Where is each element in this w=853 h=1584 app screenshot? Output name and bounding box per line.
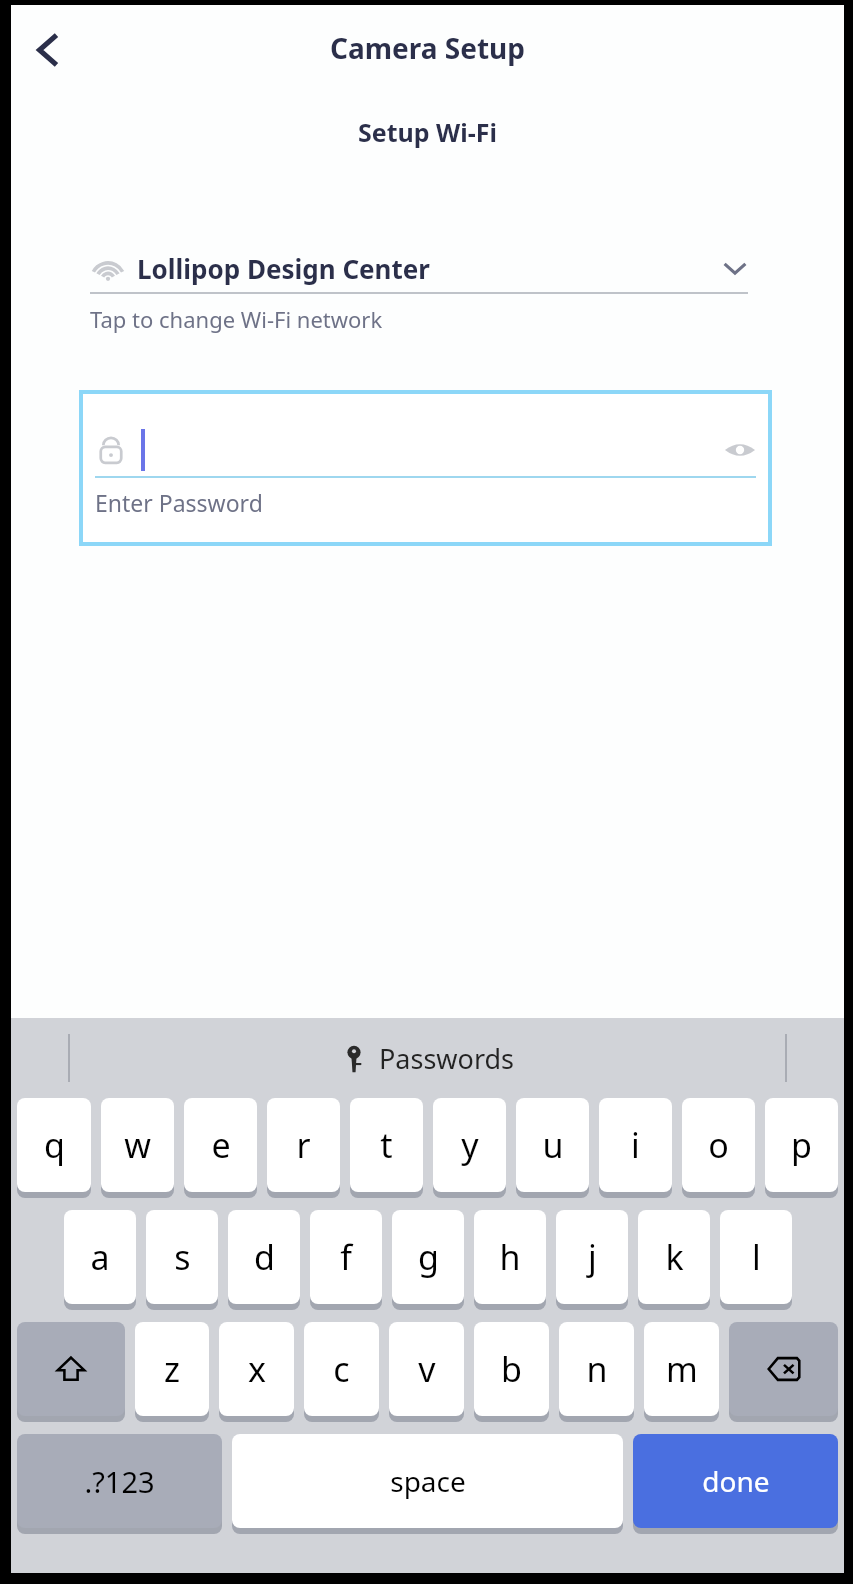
- button[interactable]: done: [633, 1434, 838, 1531]
- button[interactable]: c: [304, 1322, 379, 1419]
- button[interactable]: o: [682, 1098, 755, 1195]
- button[interactable]: Shift: [17, 1322, 125, 1419]
- button[interactable]: Lollipop Design Center: [90, 244, 748, 334]
- button[interactable]: z: [135, 1322, 209, 1419]
- staticText: p: [791, 1122, 812, 1168]
- staticText: a: [90, 1234, 110, 1280]
- staticText: y: [461, 1122, 479, 1168]
- button[interactable]: k: [638, 1210, 710, 1307]
- staticText: h: [499, 1234, 521, 1280]
- button[interactable]: g: [392, 1210, 464, 1307]
- staticText: Camera Setup: [330, 29, 525, 67]
- button[interactable]: .?123: [17, 1434, 222, 1531]
- staticText: e: [211, 1122, 231, 1168]
- button[interactable]: s: [146, 1210, 218, 1307]
- other: Show password: [724, 434, 756, 466]
- button[interactable]: Backspace: [729, 1322, 838, 1419]
- staticText: Enter Password: [95, 487, 263, 518]
- button[interactable]: w: [101, 1098, 174, 1195]
- staticText: space: [390, 1462, 466, 1500]
- button[interactable]: j: [556, 1210, 628, 1307]
- other: Choose network: [722, 255, 748, 281]
- staticText: g: [418, 1234, 439, 1280]
- button[interactable]: b: [474, 1322, 549, 1419]
- staticText: z: [164, 1346, 180, 1392]
- button[interactable]: q: [17, 1098, 91, 1195]
- staticText: r: [296, 1122, 311, 1168]
- staticText: j: [588, 1234, 597, 1280]
- button[interactable]: x: [219, 1322, 294, 1419]
- button[interactable]: f: [310, 1210, 382, 1307]
- button[interactable]: n: [559, 1322, 634, 1419]
- staticText: u: [542, 1122, 564, 1168]
- staticText: w: [124, 1122, 151, 1168]
- button[interactable]: Show password: [83, 394, 768, 542]
- button[interactable]: space: [232, 1434, 623, 1531]
- staticText: Tap to change Wi-Fi network: [90, 304, 383, 334]
- staticText: done: [702, 1462, 770, 1500]
- button[interactable]: v: [389, 1322, 464, 1419]
- staticText: c: [333, 1346, 350, 1392]
- staticText: Setup Wi-Fi: [358, 115, 497, 149]
- staticText: o: [708, 1122, 729, 1168]
- button[interactable]: Passwords: [340, 1040, 515, 1077]
- staticText: t: [380, 1122, 393, 1168]
- button[interactable]: i: [599, 1098, 672, 1195]
- staticText: f: [340, 1234, 352, 1280]
- staticText: d: [254, 1234, 275, 1280]
- staticText: q: [44, 1122, 65, 1168]
- staticText: x: [248, 1346, 266, 1392]
- button[interactable]: y: [433, 1098, 506, 1195]
- button[interactable]: h: [474, 1210, 546, 1307]
- staticText: l: [752, 1234, 761, 1280]
- staticText: Lollipop Design Center: [137, 251, 430, 286]
- button[interactable]: u: [516, 1098, 589, 1195]
- button[interactable]: d: [228, 1210, 300, 1307]
- staticText: Passwords: [379, 1040, 515, 1077]
- staticText: k: [665, 1234, 684, 1280]
- staticText: n: [586, 1346, 608, 1392]
- button[interactable]: a: [64, 1210, 136, 1307]
- staticText: b: [501, 1346, 522, 1392]
- button[interactable]: p: [765, 1098, 838, 1195]
- button[interactable]: l: [720, 1210, 792, 1307]
- staticText: i: [631, 1122, 640, 1168]
- staticText: .?123: [84, 1462, 155, 1501]
- staticText: v: [418, 1346, 436, 1392]
- button[interactable]: t: [350, 1098, 423, 1195]
- button[interactable]: m: [644, 1322, 719, 1419]
- button[interactable]: r: [267, 1098, 340, 1195]
- staticText: m: [666, 1346, 698, 1392]
- button[interactable]: Back: [19, 20, 79, 80]
- staticText: s: [174, 1234, 191, 1280]
- button[interactable]: e: [184, 1098, 257, 1195]
